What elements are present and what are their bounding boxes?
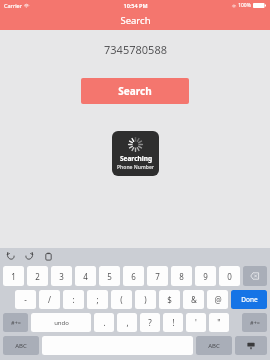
staticText: Done	[241, 295, 258, 304]
staticText: ,	[126, 317, 129, 328]
staticText: 9	[203, 271, 208, 282]
button[interactable]: 9	[195, 266, 216, 286]
staticText: (	[120, 294, 123, 305]
staticText: Phone Number	[117, 164, 154, 171]
button[interactable]: 5	[99, 266, 120, 286]
staticText: Searching	[120, 154, 152, 163]
button[interactable]: @	[207, 290, 228, 309]
button[interactable]: 4	[75, 266, 96, 286]
staticText: .	[103, 317, 106, 328]
button[interactable]: $	[159, 290, 180, 309]
staticText: 7345780588	[104, 42, 167, 57]
staticText: Search	[118, 84, 152, 98]
button[interactable]: Backspace	[243, 266, 267, 286]
button[interactable]: Undo	[6, 252, 15, 261]
button[interactable]: Hide keyboard	[235, 336, 267, 355]
button[interactable]: ;	[87, 290, 108, 309]
button[interactable]: ?	[140, 313, 160, 332]
staticText: 7	[155, 271, 160, 282]
button[interactable]: 8	[171, 266, 192, 286]
button[interactable]: Redo	[25, 252, 34, 261]
staticText: ABC	[15, 342, 27, 350]
staticText: Search	[120, 14, 151, 27]
button[interactable]: "	[209, 313, 229, 332]
staticText: /	[48, 294, 51, 305]
staticText: 4	[83, 271, 88, 282]
button[interactable]: .	[94, 313, 114, 332]
staticText: $	[167, 294, 172, 305]
button[interactable]: ABC	[196, 336, 232, 355]
button[interactable]: :	[63, 290, 84, 309]
button[interactable]: '	[186, 313, 206, 332]
staticText: 10:54 PM	[123, 2, 148, 9]
staticText: -	[24, 294, 27, 305]
staticText: #+=	[11, 319, 21, 326]
staticText: 8	[179, 271, 184, 282]
button[interactable]: #+=	[242, 313, 267, 332]
staticText: 3	[59, 271, 64, 282]
staticText: Carrier	[4, 2, 22, 9]
button[interactable]: 2	[27, 266, 48, 286]
staticText: 5	[107, 271, 112, 282]
staticText: 0	[227, 271, 232, 282]
button[interactable]: 3	[51, 266, 72, 286]
button[interactable]: Done	[231, 290, 267, 309]
staticText: '	[195, 317, 197, 328]
button[interactable]: 1	[3, 266, 24, 286]
button[interactable]: ABC	[3, 336, 39, 355]
button[interactable]: -	[15, 290, 36, 309]
button[interactable]: (	[111, 290, 132, 309]
staticText: "	[217, 317, 221, 328]
button[interactable]: Paste	[44, 252, 53, 261]
staticText: )	[144, 294, 147, 305]
staticText: 1	[11, 271, 16, 282]
staticText: undo	[54, 319, 69, 327]
staticText: ?	[148, 317, 152, 328]
button[interactable]: 7	[147, 266, 168, 286]
staticText: 2	[35, 271, 40, 282]
button[interactable]: /	[39, 290, 60, 309]
button[interactable]: &	[183, 290, 204, 309]
staticText: #+=	[250, 319, 260, 326]
button[interactable]: )	[135, 290, 156, 309]
staticText: !	[172, 317, 175, 328]
staticText: ABC	[208, 342, 220, 350]
staticText: 6	[131, 271, 136, 282]
staticText: :	[72, 294, 75, 305]
staticText: 100%	[238, 2, 251, 9]
button[interactable]: ,	[117, 313, 137, 332]
button[interactable]: 0	[219, 266, 240, 286]
staticText: &	[191, 294, 197, 305]
button[interactable]: #+=	[3, 313, 28, 332]
button[interactable]: Search	[81, 78, 189, 104]
staticText: ;	[96, 294, 99, 305]
staticText: @	[214, 294, 222, 305]
button[interactable]: !	[163, 313, 183, 332]
button[interactable]: 6	[123, 266, 144, 286]
button[interactable]: undo	[31, 313, 91, 332]
